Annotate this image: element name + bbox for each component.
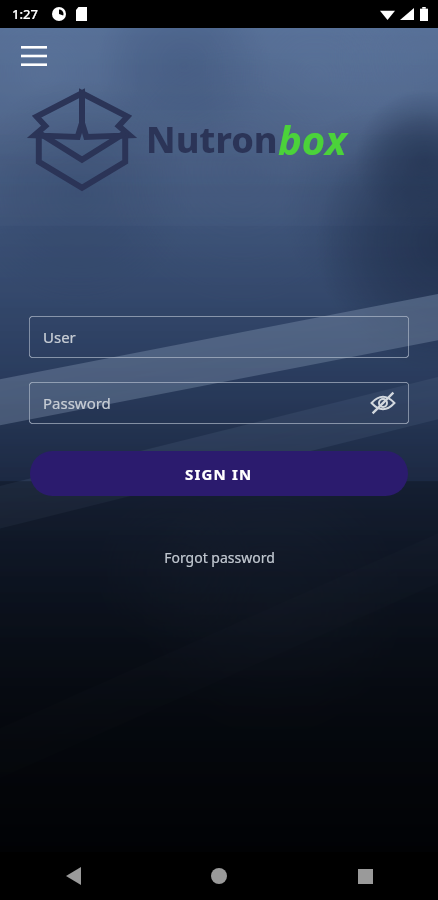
staticText: SIGN IN bbox=[185, 464, 253, 484]
button[interactable]: SIGN IN bbox=[30, 451, 408, 496]
button[interactable]: Password bbox=[29, 382, 409, 424]
staticText: Password bbox=[43, 393, 111, 413]
button[interactable]: Back bbox=[0, 852, 146, 900]
staticText: 1:27 bbox=[12, 5, 38, 23]
staticText: Forgot password bbox=[164, 548, 275, 567]
button[interactable]: Home bbox=[146, 852, 292, 900]
button[interactable]: Forgot password bbox=[0, 548, 438, 567]
staticText: box bbox=[278, 112, 347, 166]
staticText: Nutron bbox=[146, 115, 278, 164]
button[interactable]: Recent apps bbox=[292, 852, 438, 900]
button[interactable]: Menu bbox=[14, 36, 54, 76]
button[interactable]: Show password bbox=[365, 385, 401, 421]
button[interactable]: User bbox=[29, 316, 409, 358]
staticText: User bbox=[43, 327, 76, 347]
